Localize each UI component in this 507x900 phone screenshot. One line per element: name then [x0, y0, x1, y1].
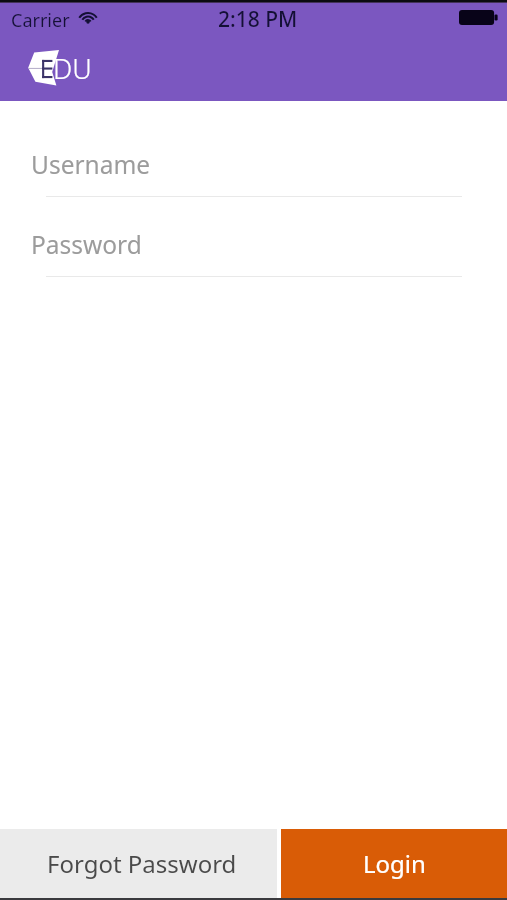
staticText: Username	[31, 148, 151, 181]
staticText: DU	[53, 50, 92, 87]
staticText: Login	[363, 847, 426, 880]
other: Wi-Fi signal	[78, 11, 98, 33]
staticText: Carrier	[11, 8, 70, 33]
staticText: 2:18 PM	[218, 5, 298, 34]
other: Battery full	[459, 10, 498, 25]
button[interactable]: Username	[0, 148, 507, 197]
button[interactable]: Forgot Password	[0, 829, 277, 898]
button[interactable]: Password	[0, 228, 507, 277]
other: EDU logo	[0, 44, 110, 96]
button[interactable]: Login	[281, 829, 507, 898]
staticText: Forgot Password	[47, 847, 237, 880]
staticText: Password	[31, 228, 142, 261]
